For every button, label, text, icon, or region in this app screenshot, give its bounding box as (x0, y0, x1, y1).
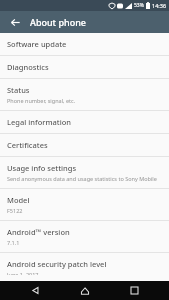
button[interactable]: Legal information (0, 111, 169, 133)
staticText: 53% (134, 2, 144, 9)
staticText: 7.1.1 (7, 239, 20, 246)
staticText: Legal information (7, 117, 71, 127)
button[interactable]: Software update (0, 33, 169, 55)
button[interactable]: Android™ version (0, 221, 169, 252)
staticText: Certificates (7, 140, 48, 150)
staticText: Android security patch level (7, 259, 107, 269)
staticText: About phone (30, 16, 86, 28)
staticText: Software update (7, 39, 67, 49)
button[interactable]: Back (0, 11, 30, 33)
button[interactable]: Home (70, 281, 100, 300)
button[interactable]: Recent apps (119, 281, 149, 300)
button[interactable]: Model (0, 189, 169, 220)
button[interactable]: Certificates (0, 134, 169, 156)
staticText: Send anonymous data and usage statistics… (7, 175, 157, 182)
staticText: June 1, 2017 (7, 271, 39, 275)
button[interactable]: Usage info settings (0, 157, 169, 188)
staticText: Android™ version (7, 227, 70, 237)
staticText: Diagnostics (7, 62, 49, 72)
staticText: Model (7, 195, 30, 205)
staticText: Status (7, 85, 30, 95)
button[interactable]: Status (0, 79, 169, 110)
staticText: Phone number, signal, etc. (7, 97, 76, 104)
button[interactable]: Android security patch level (0, 253, 169, 281)
staticText: Usage info settings (7, 163, 77, 173)
staticText: F5122 (7, 207, 23, 214)
staticText: 14:36 (152, 2, 167, 9)
button[interactable]: Back (20, 281, 50, 300)
button[interactable]: Diagnostics (0, 56, 169, 78)
